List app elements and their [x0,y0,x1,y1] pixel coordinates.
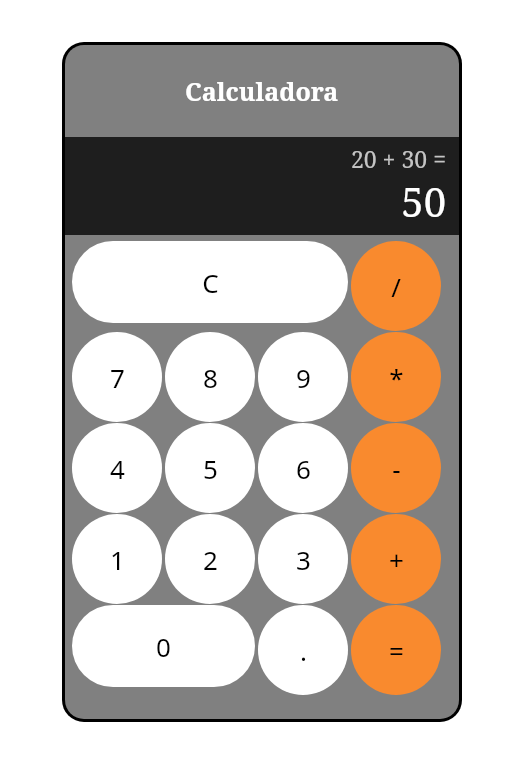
button[interactable]: C [72,241,348,323]
staticText: 2 [203,542,218,577]
staticText: 8 [203,360,218,395]
button[interactable]: . [258,605,348,695]
button[interactable]: 3 [258,514,348,604]
staticText: * [389,360,404,395]
button[interactable]: 6 [258,423,348,513]
staticText: / [391,269,401,304]
button[interactable]: / [351,241,441,331]
staticText: 7 [110,360,125,395]
staticText: 20 + 30 = [350,143,446,174]
staticText: . [300,633,307,668]
staticText: Calculadora [185,74,339,108]
staticText: = [389,633,404,668]
button[interactable]: = [351,605,441,695]
button[interactable]: + [351,514,441,604]
staticText: C [202,265,219,300]
button[interactable]: 1 [72,514,162,604]
button[interactable]: 0 [72,605,255,687]
staticText: 3 [296,542,311,577]
staticText: 9 [296,360,311,395]
button[interactable]: 2 [165,514,255,604]
button[interactable]: 5 [165,423,255,513]
button[interactable]: * [351,332,441,422]
staticText: 1 [110,542,125,577]
button[interactable]: 9 [258,332,348,422]
staticText: 4 [110,451,125,486]
button[interactable]: 8 [165,332,255,422]
staticText: 0 [156,629,171,664]
staticText: 5 [203,451,218,486]
button[interactable]: 4 [72,423,162,513]
staticText: 6 [296,451,311,486]
button[interactable]: 7 [72,332,162,422]
staticText: + [389,542,404,577]
staticText: 50 [401,174,446,228]
staticText: - [392,451,401,486]
button[interactable]: - [351,423,441,513]
